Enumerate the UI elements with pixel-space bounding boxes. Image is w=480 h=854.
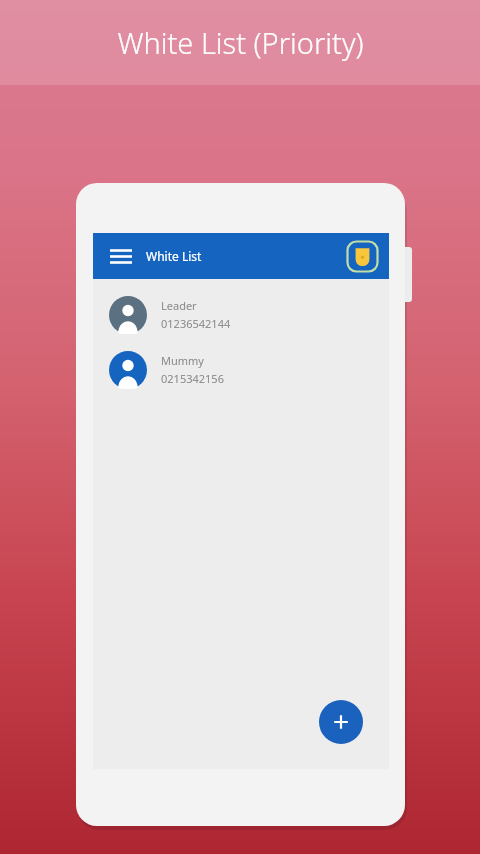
staticText: Leader [161,298,197,313]
staticText: 01236542144 [161,316,231,331]
staticText: White List [146,248,202,264]
button[interactable]: Open navigation menu [104,239,138,273]
button[interactable]: Protection enabled [346,240,379,273]
staticText: White List (Priority) [117,23,364,62]
staticText: Mummy [161,353,204,368]
button[interactable]: Mummy [93,342,389,397]
button[interactable]: Leader [93,287,389,342]
button[interactable]: Add contact [319,700,363,744]
staticText: 0215342156 [161,371,224,386]
